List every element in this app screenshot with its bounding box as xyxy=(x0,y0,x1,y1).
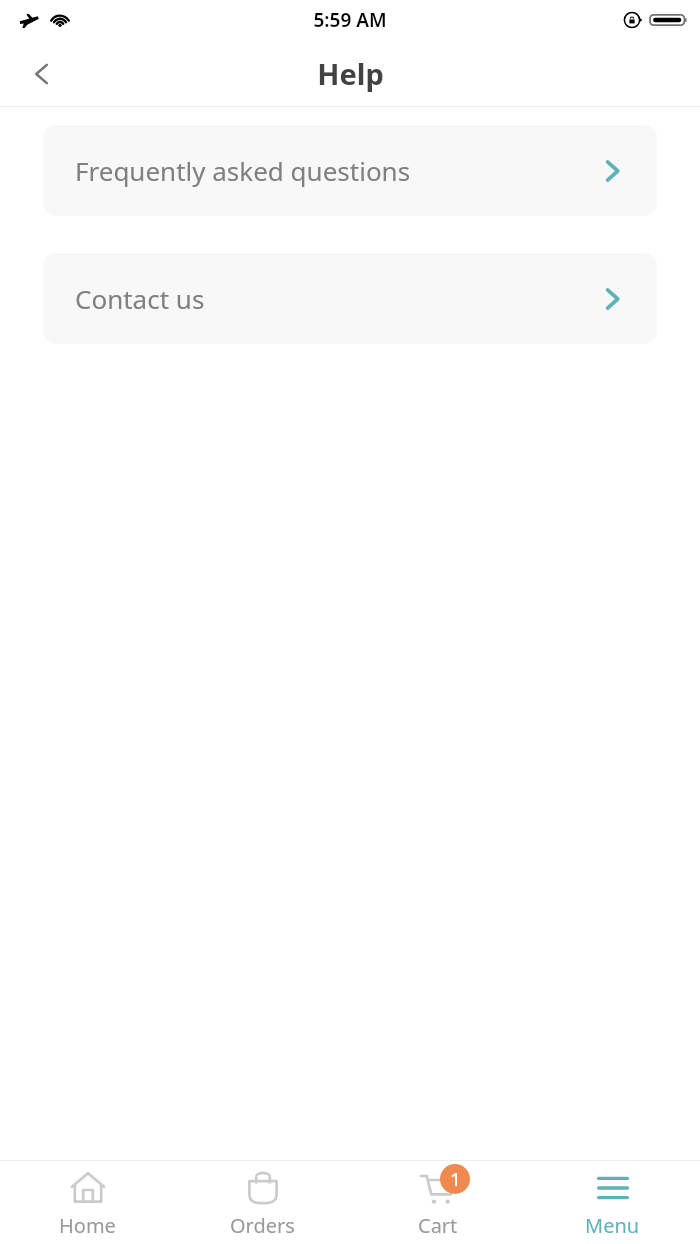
staticText: Cart xyxy=(418,1212,458,1239)
button[interactable]: Frequently asked questions xyxy=(43,125,657,216)
button[interactable]: Back xyxy=(10,42,74,106)
staticText: Frequently asked questions xyxy=(75,153,599,188)
staticText: Contact us xyxy=(75,281,599,316)
button[interactable]: Orders xyxy=(175,1161,350,1244)
button[interactable]: Cart xyxy=(350,1161,525,1244)
button[interactable]: Menu xyxy=(525,1161,700,1244)
staticText: Orders xyxy=(230,1212,295,1239)
staticText: Menu xyxy=(585,1212,640,1239)
staticText: Home xyxy=(59,1212,116,1239)
button[interactable]: Contact us xyxy=(43,253,657,344)
staticText: Help xyxy=(317,54,384,93)
staticText: 5:59 AM xyxy=(313,7,387,33)
staticText: 1 xyxy=(450,1167,461,1192)
button[interactable]: Home xyxy=(0,1161,175,1244)
